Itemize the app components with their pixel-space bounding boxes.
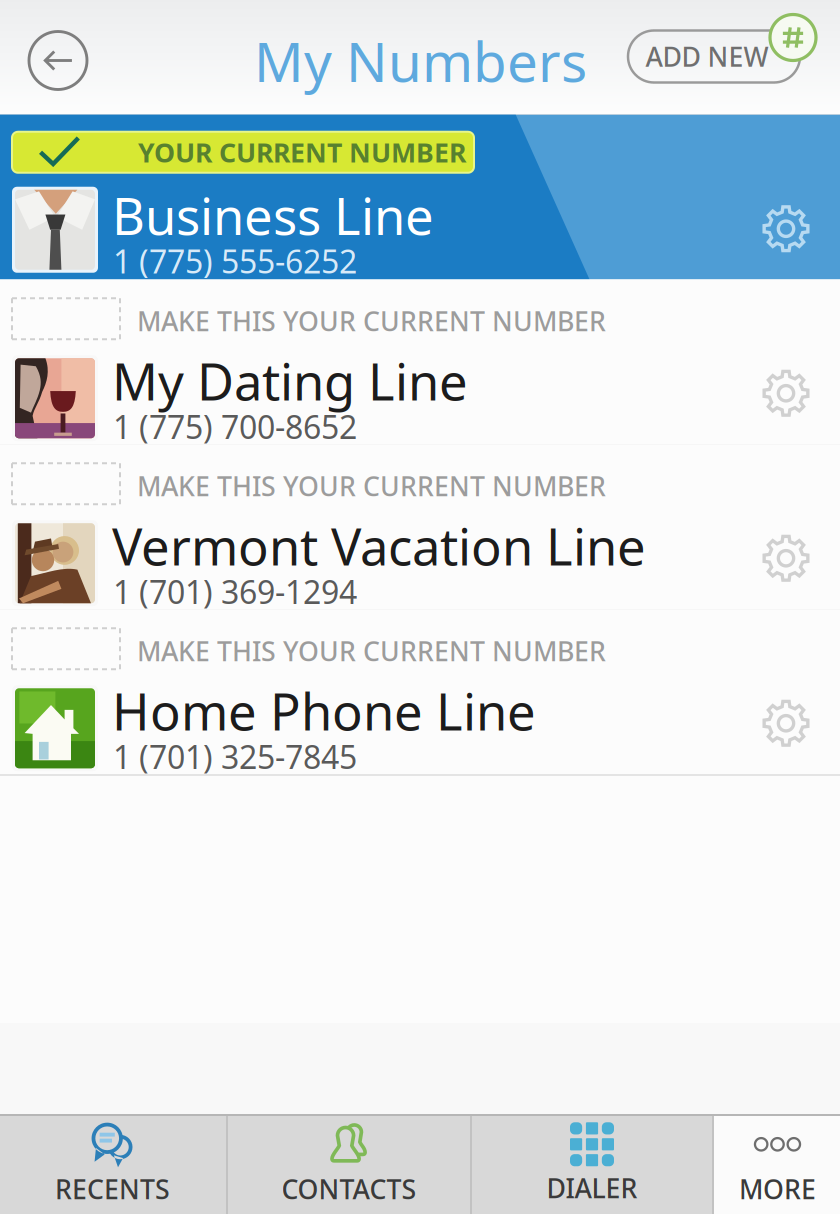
staticText: MAKE THIS YOUR CURRENT NUMBER: [137, 468, 606, 504]
button[interactable]: ADD NEW: [0, 0, 824, 92]
staticText: Vermont Vacation Line: [112, 512, 646, 580]
button[interactable]: RECENTS: [0, 1114, 226, 1214]
staticText: Home Phone Line: [112, 677, 536, 745]
staticText: My Numbers: [254, 24, 587, 97]
button[interactable]: CONTACTS: [228, 1114, 470, 1214]
staticText: 1 (701) 325-7845: [113, 735, 357, 778]
staticText: MORE: [739, 1171, 816, 1207]
staticText: Business Line: [112, 182, 434, 249]
button[interactable]: MAKE THIS YOUR CURRENT NUMBER: [0, 611, 840, 776]
staticText: 1 (775) 700-8652: [113, 405, 357, 448]
button[interactable]: MORE: [714, 1114, 840, 1214]
staticText: MAKE THIS YOUR CURRENT NUMBER: [137, 633, 606, 669]
staticText: YOUR CURRENT NUMBER: [138, 134, 466, 170]
staticText: MAKE THIS YOUR CURRENT NUMBER: [137, 303, 606, 339]
button[interactable]: DIALER: [472, 1114, 712, 1214]
button[interactable]: MAKE THIS YOUR CURRENT NUMBER: [0, 281, 840, 446]
staticText: DIALER: [546, 1170, 637, 1206]
button[interactable]: Back: [0, 0, 111, 117]
staticText: RECENTS: [55, 1171, 170, 1207]
staticText: My Dating Line: [112, 347, 468, 415]
button[interactable]: YOUR CURRENT NUMBER: [0, 116, 840, 281]
staticText: CONTACTS: [281, 1171, 416, 1207]
staticText: 1 (775) 555-6252: [113, 240, 357, 282]
staticText: 1 (701) 369-1294: [113, 570, 357, 613]
button[interactable]: MAKE THIS YOUR CURRENT NUMBER: [0, 446, 840, 611]
staticText: ADD NEW: [645, 39, 768, 74]
